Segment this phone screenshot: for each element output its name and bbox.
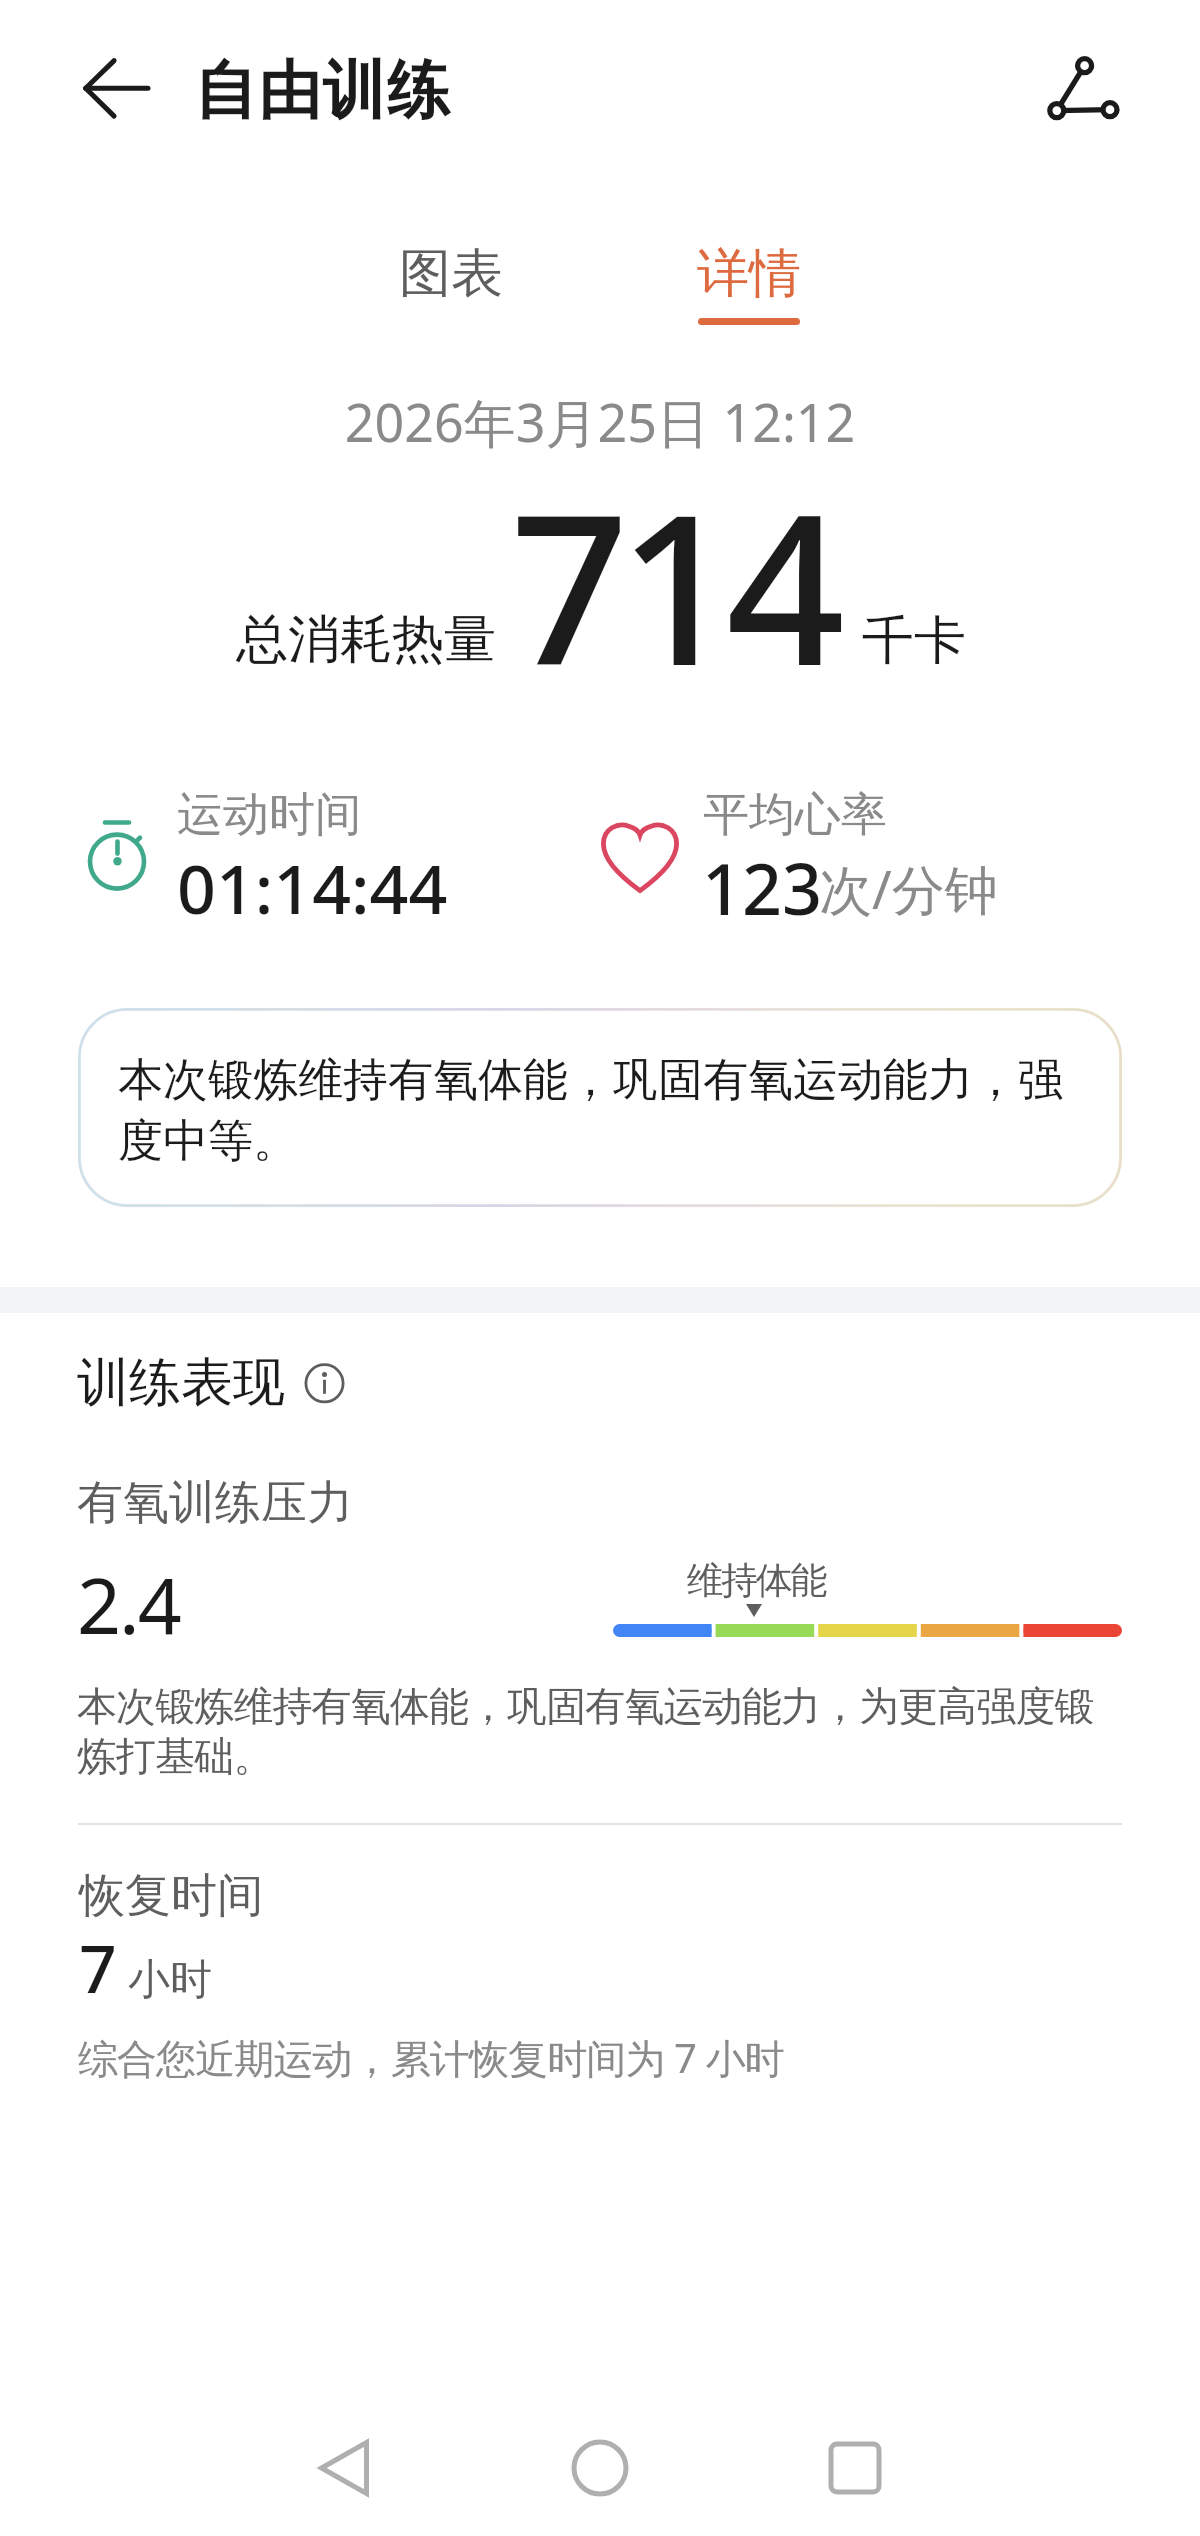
staticText: 训练表现 (77, 1350, 285, 1416)
button[interactable]: Back (264, 2400, 424, 2536)
staticText: 综合您近期运动，累计恢复时间为 7 小时 (78, 2030, 784, 2085)
button[interactable]: 详情 (676, 241, 822, 325)
button[interactable]: Home (520, 2400, 680, 2536)
staticText: 01:14:44 (177, 841, 448, 934)
staticText: 2.4 (77, 1552, 180, 1657)
button[interactable]: Back (57, 40, 157, 140)
staticText: 运动时间 (177, 786, 361, 844)
button[interactable]: Share (1034, 38, 1134, 138)
staticText: 千卡 (862, 608, 966, 674)
staticText: 总消耗热量 (236, 607, 496, 673)
staticText: 图表 (399, 241, 503, 307)
staticText: 详情 (697, 241, 801, 307)
staticText: 维持体能 (688, 1557, 826, 1604)
staticText: 恢复时间 (79, 1867, 263, 1925)
button[interactable]: Info (299, 1359, 351, 1411)
staticText: 123 (702, 840, 823, 935)
staticText: 平均心率 (703, 786, 887, 844)
staticText: 714 (510, 443, 834, 726)
staticText: 7 (79, 1922, 117, 2012)
staticText: 有氧训练压力 (77, 1474, 353, 1532)
staticText: 2026年3月25日 12:12 (0, 386, 1200, 457)
button[interactable]: Recents (775, 2400, 935, 2536)
staticText: 次/分钟 (819, 852, 998, 924)
staticText: 本次锻炼维持有氧体能，巩固有氧运动能力，为更高强度锻炼打基础。 (77, 1681, 1123, 1782)
staticText: 自由训练 (194, 51, 452, 130)
staticText: 本次锻炼维持有氧体能，巩固有氧运动能力，强度中等。 (118, 1052, 1078, 1169)
staticText: 小时 (128, 1954, 212, 2007)
button[interactable]: 图表 (378, 241, 524, 341)
